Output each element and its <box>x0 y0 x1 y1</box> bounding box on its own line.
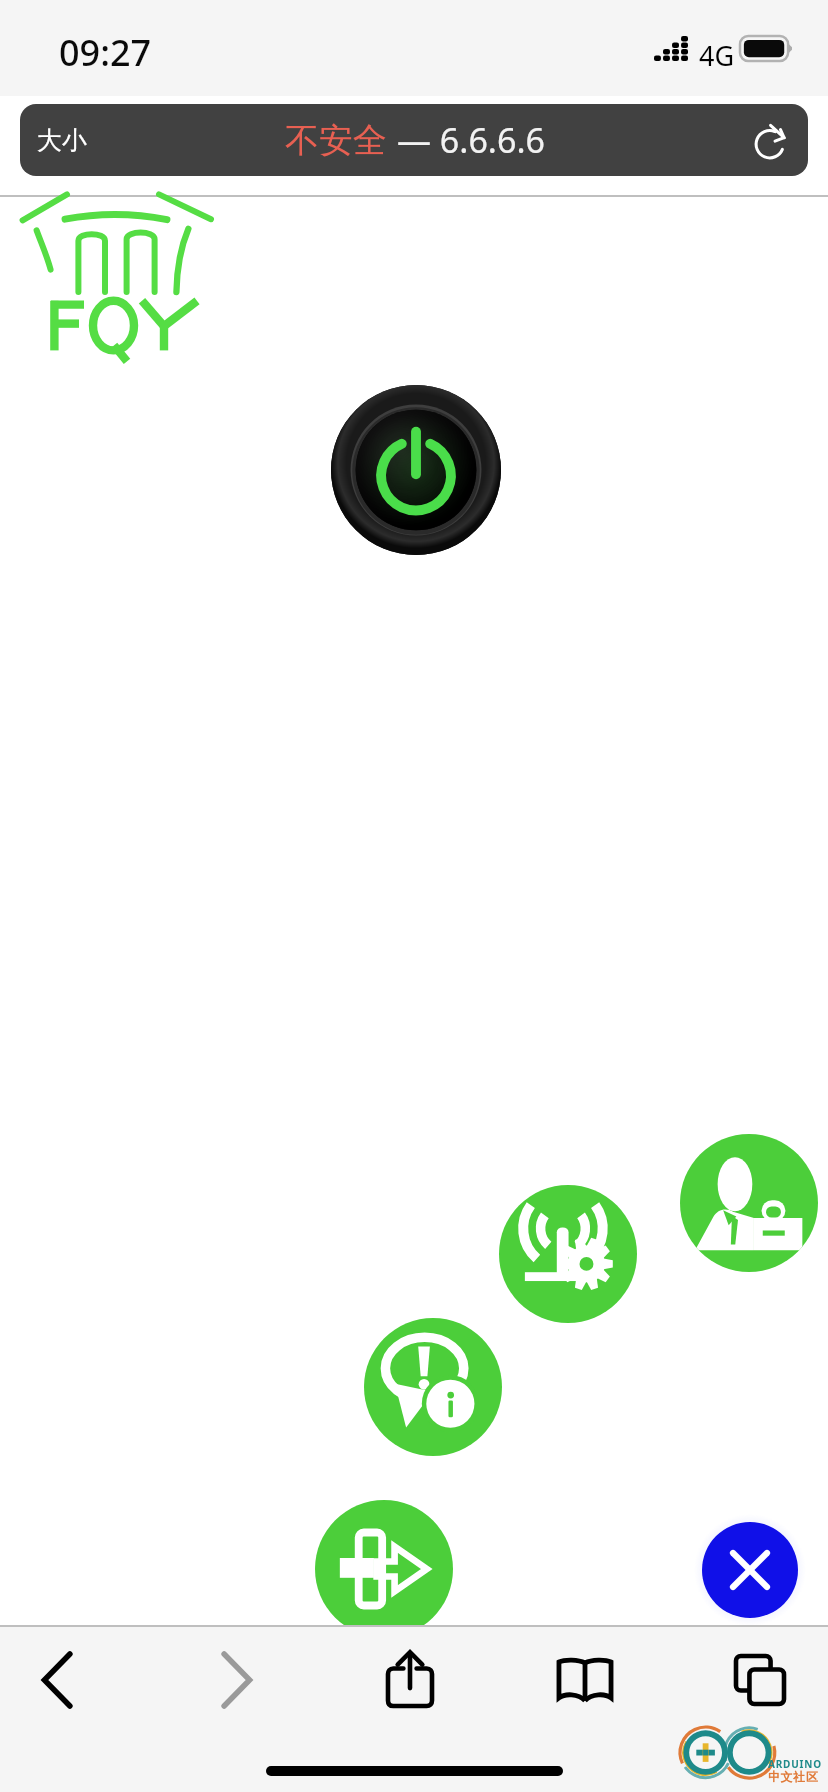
staticText: ARDUINO <box>768 1757 822 1771</box>
button[interactable]: Power <box>331 385 501 555</box>
button[interactable]: Tabs <box>712 1636 808 1724</box>
button[interactable]: Wireless settings <box>499 1185 637 1323</box>
button[interactable]: Port forward <box>315 1500 453 1638</box>
staticText: 09:27 <box>59 28 152 77</box>
button[interactable]: Alerts info <box>364 1318 502 1456</box>
staticText: — 6.6.6.6 <box>397 117 545 163</box>
staticText: 不安全 <box>285 119 387 162</box>
button[interactable]: 大小 <box>20 104 808 176</box>
button[interactable]: User security <box>680 1134 818 1272</box>
button[interactable]: Back <box>10 1636 106 1724</box>
staticText: 中文社区 <box>768 1769 819 1784</box>
button[interactable]: Forward <box>188 1636 284 1724</box>
button[interactable]: Close <box>702 1522 798 1618</box>
button[interactable]: Bookmarks <box>537 1636 633 1724</box>
button[interactable]: Reload <box>746 115 796 165</box>
staticText: 大小 <box>37 125 87 156</box>
button[interactable]: Share <box>362 1634 458 1722</box>
staticText: 4G <box>699 37 735 74</box>
